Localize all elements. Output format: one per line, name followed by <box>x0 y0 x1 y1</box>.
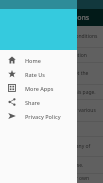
staticText: By installing the app you accept the ter… <box>5 70 98 77</box>
other: Rate Us <box>8 70 16 78</box>
button[interactable]: More Apps <box>0 81 77 95</box>
other: Share <box>8 98 16 106</box>
staticText: Third party links lie outside our own <box>5 175 90 182</box>
button[interactable]: Share <box>0 95 77 109</box>
staticText: All content provided here is for various <box>5 107 96 114</box>
other: Home <box>8 56 16 64</box>
staticText: which you may use this application today… <box>5 52 98 59</box>
staticText: Please read these terms and conditions u… <box>5 33 98 40</box>
staticText: Share <box>25 99 40 106</box>
other: More Apps <box>8 84 16 92</box>
staticText: We shall not be held liable for any of <box>5 143 91 150</box>
button[interactable]: Rate Us <box>0 67 77 81</box>
staticText: Rate Us <box>25 71 46 78</box>
staticText: Terms & Conditions <box>24 13 90 23</box>
staticText: More Apps <box>25 85 54 92</box>
button[interactable]: Home <box>0 53 77 67</box>
staticText: the damages arising from its use. <box>5 162 84 169</box>
other: Privacy Policy <box>8 112 16 120</box>
button[interactable]: Privacy Policy <box>0 109 77 123</box>
staticText: Home <box>25 57 41 64</box>
staticText: Privacy Policy <box>25 113 61 120</box>
staticText: and all conditions set out on this page. <box>5 89 96 96</box>
